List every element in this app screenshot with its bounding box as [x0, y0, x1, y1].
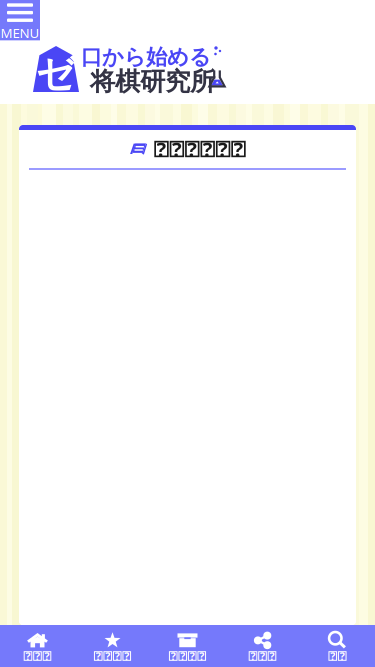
staticText: ? — [190, 649, 195, 663]
staticText: ? — [340, 649, 345, 663]
staticText: 口から始める — [81, 44, 211, 70]
button[interactable]: Menu — [0, 0, 40, 45]
button[interactable]: Search — [300, 625, 375, 667]
staticText: ? — [180, 649, 185, 663]
staticText: ? — [115, 649, 120, 663]
button[interactable]: Home — [0, 625, 75, 667]
staticText: 将棋研究所 — [90, 66, 215, 97]
staticText: ? — [199, 649, 204, 663]
staticText: ? — [35, 649, 40, 663]
staticText: ? — [44, 649, 49, 663]
staticText: ? — [25, 649, 30, 663]
staticText: ? — [187, 136, 197, 162]
staticText: ? — [260, 649, 265, 663]
staticText: ? — [233, 136, 243, 162]
staticText: ? — [203, 136, 213, 162]
staticText: ? — [156, 136, 166, 162]
button[interactable]: Categories — [150, 625, 225, 667]
button[interactable]: ゼ — [33, 45, 221, 93]
staticText: ゼ — [36, 50, 76, 98]
staticText: ? — [269, 649, 274, 663]
staticText: ? — [218, 136, 228, 162]
staticText: MENU — [0, 24, 39, 42]
button[interactable]: Share — [225, 625, 300, 667]
button[interactable]: Favourites — [75, 625, 150, 667]
staticText: ? — [105, 649, 110, 663]
staticText: ? — [124, 649, 129, 663]
staticText: ? — [171, 649, 176, 663]
staticText: ? — [96, 649, 101, 663]
staticText: ? — [172, 136, 182, 162]
staticText: ? — [250, 649, 255, 663]
staticText: ? — [330, 649, 335, 663]
